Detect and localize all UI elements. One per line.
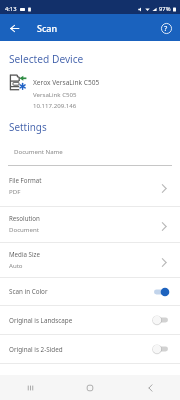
staticText: File Format [9,176,42,184]
staticText: Auto [9,261,23,269]
button[interactable]: Recent apps [0,375,60,400]
button[interactable]: Original is Landscape [0,306,180,334]
button[interactable]: Home [60,375,120,400]
staticText: Xerox VersaLink C505 [33,78,100,87]
button[interactable]: Media Size [0,243,180,277]
button[interactable]: Back [120,375,180,400]
staticText: Resolution [9,214,40,222]
staticText: 10.117.209.146 [33,101,77,109]
staticText: Settings [9,120,47,133]
button[interactable]: Resolution [0,207,180,242]
staticText: Scan [37,22,58,34]
staticText: Original is 2-Sided [9,345,154,354]
staticText: ? [164,23,168,33]
button[interactable]: Xerox VersaLink C505 [0,72,180,103]
button[interactable]: Scan in Color [0,278,180,305]
staticText: Document Name [14,147,63,155]
staticText: 97% [159,5,171,13]
staticText: 4:13 [5,5,17,13]
staticText: Selected Device [9,52,84,66]
staticText: Document [9,225,39,233]
button[interactable]: Help [155,17,177,39]
button[interactable]: Original is 2-Sided [0,335,180,363]
staticText: PDF [9,187,21,195]
staticText: Media Size [9,250,40,258]
staticText: Original is Landscape [9,316,154,325]
staticText: VersaLink C505 [33,90,77,98]
staticText: Scan in Color [9,287,154,296]
button[interactable]: Navigate up [3,17,25,39]
button[interactable]: File Format [0,166,180,206]
